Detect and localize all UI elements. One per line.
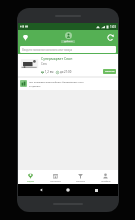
button[interactable]: Refresh [105,32,116,43]
staticText: и сделать [29,84,41,87]
staticText: Сеть [41,62,48,66]
staticText: Профиль [101,180,111,183]
staticText: Введите название магазина или товара [22,48,73,52]
staticText: 1:03 [110,25,116,29]
staticText: до 21:00 [60,70,72,74]
staticText: Супермаркет Слон [41,56,73,61]
button[interactable]: Корзина [68,170,93,184]
button[interactable]: Введите название магазина или товара [20,46,116,53]
button[interactable]: Location [20,32,31,43]
staticText: 1,2 км [45,70,54,74]
staticText: Корзина [76,180,85,183]
button[interactable]: App logo [61,32,75,43]
staticText: добрый [64,40,73,43]
staticText: Магазины [50,180,61,183]
button[interactable]: Home [63,185,73,195]
button[interactable]: Супермаркет Слон [18,54,118,76]
staticText: Мы поможем вам выбрать ближайший Слон [29,80,84,83]
button[interactable]: Recents [91,185,101,195]
staticText: Рядом [27,180,34,183]
button[interactable]: Заказать [103,69,116,74]
button[interactable]: Магазины [43,170,68,184]
button[interactable]: Мы поможем вам выбрать ближайший Слон [18,78,118,90]
button[interactable]: Back [36,185,46,195]
staticText: Заказать [105,70,115,73]
button[interactable]: Рядом [18,170,43,184]
button[interactable]: Профиль [93,170,118,184]
